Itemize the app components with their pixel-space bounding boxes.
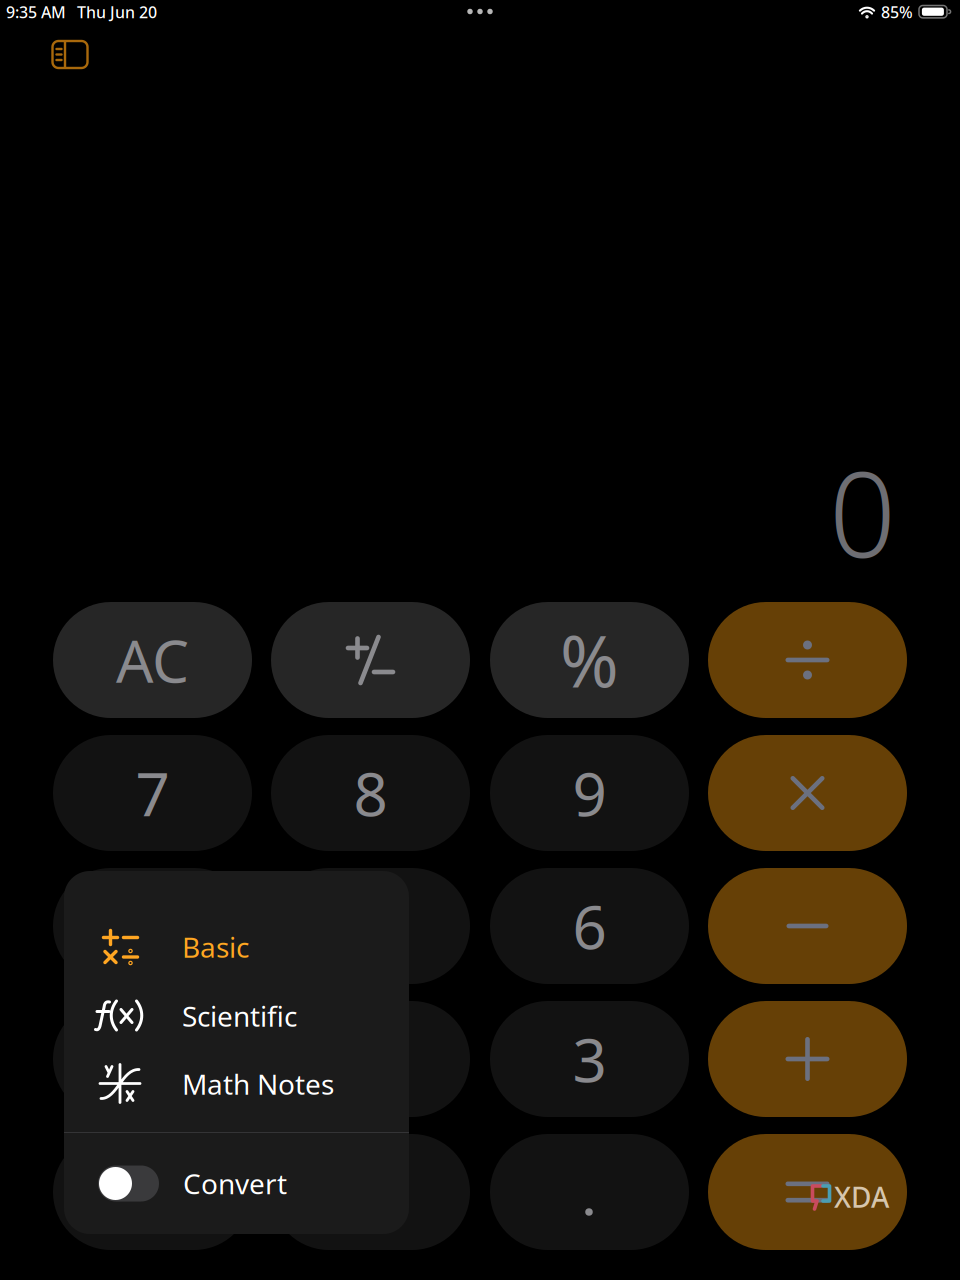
staticText: XDA: [834, 1178, 889, 1216]
button[interactable]: Divide: [708, 602, 907, 718]
button[interactable]: Show sidebar: [42, 30, 97, 80]
button[interactable]: Scientific: [64, 982, 409, 1050]
staticText: 1: [135, 1019, 169, 1099]
button[interactable]: Math Notes: [64, 1050, 409, 1118]
staticText: 9: [572, 753, 606, 833]
button[interactable]: Minus: [708, 868, 907, 984]
button[interactable]: 0: [53, 1134, 252, 1250]
button[interactable]: 4: [53, 868, 252, 984]
staticText: Basic: [182, 928, 249, 966]
button[interactable]: 6: [490, 868, 689, 984]
staticText: 6: [572, 886, 606, 966]
button[interactable]: [271, 1134, 470, 1250]
button[interactable]: 8: [271, 735, 470, 851]
button[interactable]: Plus: [708, 1001, 907, 1117]
staticText: Scientific: [182, 997, 297, 1035]
staticText: 0: [829, 434, 896, 590]
staticText: Thu Jun 20: [77, 1, 157, 23]
staticText: AC: [116, 621, 189, 699]
button[interactable]: 1: [53, 1001, 252, 1117]
staticText: 9:35 AM: [6, 1, 66, 23]
button[interactable]: Decimal point: [490, 1134, 689, 1250]
staticText: 0: [135, 1152, 169, 1232]
button[interactable]: 3: [490, 1001, 689, 1117]
button[interactable]: Convert: [64, 1133, 409, 1234]
button[interactable]: AC: [53, 602, 252, 718]
button[interactable]: 2: [271, 1001, 470, 1117]
button[interactable]: Plus minus: [271, 602, 470, 718]
staticText: Convert: [183, 1165, 287, 1202]
button[interactable]: Equals: [708, 1134, 907, 1250]
staticText: 8: [353, 753, 387, 833]
button[interactable]: Basic: [64, 913, 409, 981]
button[interactable]: 5: [271, 868, 470, 984]
staticText: 85%: [881, 1, 913, 23]
button[interactable]: 9: [490, 735, 689, 851]
button[interactable]: Multiply: [708, 735, 907, 851]
staticText: %: [560, 613, 619, 707]
staticText: 7: [135, 753, 169, 833]
button[interactable]: %: [490, 602, 689, 718]
staticText: Math Notes: [182, 1065, 334, 1103]
button[interactable]: 7: [53, 735, 252, 851]
staticText: 4: [135, 886, 169, 966]
staticText: 3: [572, 1019, 606, 1099]
